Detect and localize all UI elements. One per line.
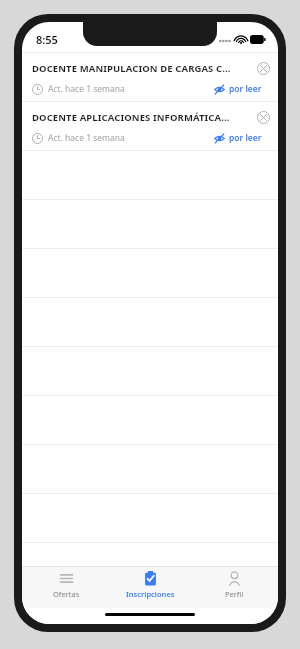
button[interactable]: por leer [212,131,264,145]
button[interactable]: Perfil [194,566,274,608]
staticText: Act. hace 1 semana [48,83,125,95]
staticText: Act. hace 1 semana [48,132,125,144]
staticText: DOCENTE MANIPULACION DE CARGAS C... [32,62,250,75]
button[interactable]: Cerrar [254,108,272,126]
staticText: DOCENTE APLICACIONES INFORMÁTICA... [32,111,250,124]
button[interactable]: Ofertas [26,566,106,608]
staticText: 8:55 [36,32,58,47]
staticText: Inscripciones [126,589,175,599]
button[interactable]: DOCENTE APLICACIONES INFORMÁTICA... [22,102,278,150]
button[interactable]: por leer [212,82,264,96]
staticText: por leer [229,132,262,144]
button[interactable]: DOCENTE MANIPULACION DE CARGAS C... [22,53,278,101]
staticText: Perfil [225,589,244,599]
button[interactable]: Inscripciones [110,566,190,608]
staticText: por leer [229,83,262,95]
staticText: Ofertas [53,589,80,599]
button[interactable]: Cerrar [254,59,272,77]
